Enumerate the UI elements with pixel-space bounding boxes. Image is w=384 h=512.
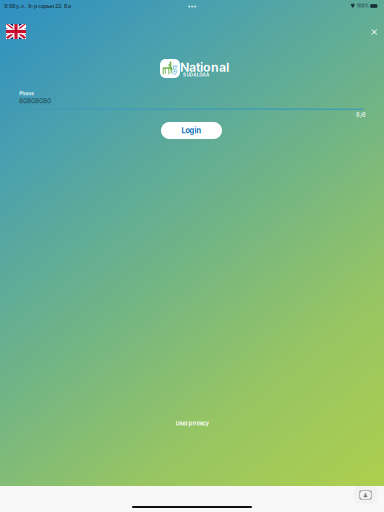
staticText: 80808080 — [19, 97, 51, 105]
staticText: 8/8 — [356, 111, 366, 118]
button[interactable]: Close — [364, 22, 384, 42]
staticText: 100% — [357, 3, 369, 9]
staticText: User privacy — [175, 420, 208, 427]
staticText: Login — [181, 126, 201, 135]
staticText: 9:58 у.х. 9-р сарын 22. Ба — [4, 3, 71, 9]
staticText: ••• — [187, 2, 196, 10]
button[interactable]: Keyboard — [354, 486, 377, 504]
staticText: Phone — [19, 91, 34, 96]
staticText: National — [180, 60, 229, 75]
button[interactable]: Language — [6, 24, 26, 39]
button[interactable]: Login — [161, 122, 222, 139]
button[interactable]: User privacy — [175, 420, 208, 427]
staticText: SUDALGAA — [183, 72, 209, 77]
